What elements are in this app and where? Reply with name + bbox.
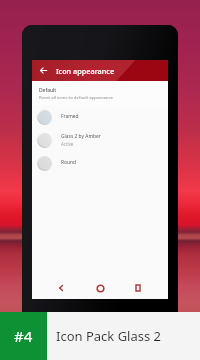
staticText: Default [39,87,57,94]
staticText: Icon appearance [56,66,115,76]
staticText: Glass 2 by Amber [61,133,101,140]
button[interactable]: Glass 2 by Amber [32,128,168,151]
button[interactable]: Default [32,81,168,105]
button[interactable]: Framed [32,105,168,128]
staticText: Framed [61,113,79,120]
button[interactable]: Home [88,277,112,299]
button[interactable]: Round [32,151,168,174]
staticText: Round [61,159,77,166]
button[interactable]: Back [32,60,54,81]
button[interactable]: Recent apps [127,277,149,299]
staticText: #4 [14,326,33,346]
staticText: Active [61,141,74,147]
button[interactable]: Back [32,60,168,81]
staticText: Reset all icons to default appearance [39,94,114,100]
staticText: Icon Pack Glass 2 [56,327,162,345]
button[interactable]: Back [50,277,71,299]
